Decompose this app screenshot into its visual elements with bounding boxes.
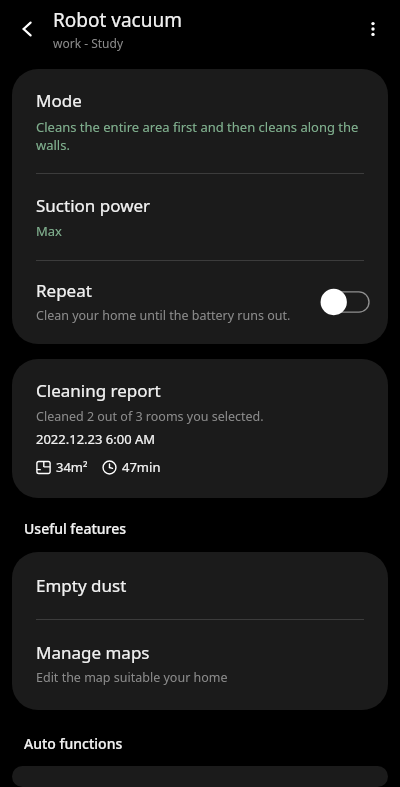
staticText: Manage maps [36, 641, 150, 664]
button[interactable]: Manage maps [12, 620, 388, 710]
button[interactable]: Mode [12, 69, 388, 173]
staticText: Robot vacuum [53, 7, 182, 33]
staticText: Max [36, 222, 62, 240]
button[interactable]: Cleaning report [12, 359, 388, 498]
staticText: Auto functions [24, 734, 123, 753]
staticText: Clean your home until the battery runs o… [36, 307, 291, 324]
staticText: Useful features [24, 519, 127, 538]
button[interactable]: Back [4, 6, 50, 52]
staticText: 2022.12.23 6:00 AM [36, 430, 156, 448]
staticText: Cleaning report [36, 379, 161, 402]
button[interactable]: More options [350, 6, 396, 52]
staticText: Cleaned 2 out of 3 rooms you selected. [36, 408, 264, 425]
button[interactable]: Empty dust [12, 552, 388, 619]
staticText: Suction power [36, 194, 151, 217]
staticText: work - Study [53, 35, 123, 51]
button[interactable]: Repeat [320, 288, 370, 316]
staticText: 47min [122, 458, 161, 476]
button[interactable]: Repeat [12, 261, 388, 344]
button[interactable]: Suction power [12, 174, 388, 260]
staticText: Repeat [36, 279, 92, 302]
staticText: Empty dust [36, 574, 127, 597]
staticText: Cleans the entire area first and then cl… [36, 118, 364, 154]
staticText: Edit the map suitable your home [36, 669, 228, 686]
staticText: 34m² [56, 458, 88, 476]
staticText: Mode [36, 89, 82, 112]
